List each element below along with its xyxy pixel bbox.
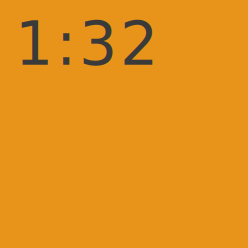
staticText: 1:32 [15,9,158,79]
